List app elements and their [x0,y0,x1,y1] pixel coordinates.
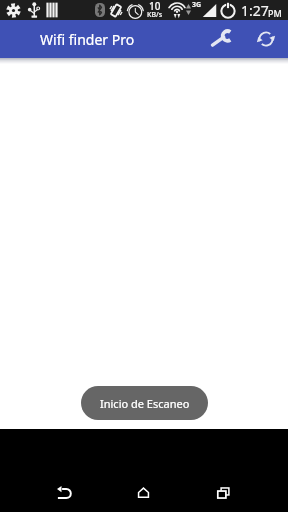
staticText: 3G [192,0,202,10]
button[interactable]: Recents [200,469,247,512]
staticText: 10 [149,0,161,11]
button[interactable]: Settings [204,21,240,57]
staticText: 1:27 [241,1,269,20]
button[interactable]: Refresh [248,21,284,57]
button[interactable]: Inicio de Escaneo [81,386,208,420]
staticText: KB/s [147,10,163,20]
staticText: Wifi finder Pro [40,30,135,49]
staticText: PM [268,7,282,19]
staticText: Inicio de Escaneo [100,396,190,411]
button[interactable]: Home [120,469,167,512]
button[interactable]: Back [41,469,88,512]
